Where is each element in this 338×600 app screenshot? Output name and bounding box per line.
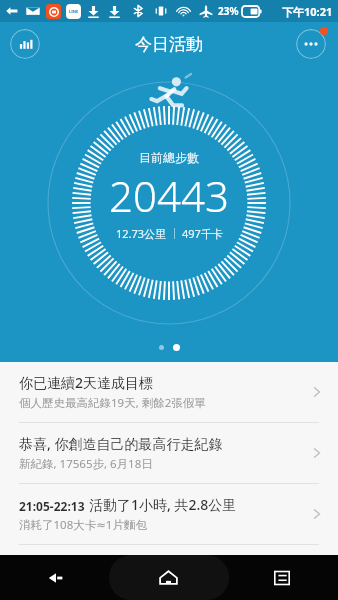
button[interactable]: 21:05-22:13 xyxy=(0,484,338,544)
staticText: 12.73公里 xyxy=(116,226,167,241)
staticText: 21:05-22:13 xyxy=(19,498,85,514)
staticText: 23% xyxy=(218,4,239,18)
button[interactable]: 更多選項 xyxy=(296,29,326,59)
button[interactable]: 主畫面 xyxy=(112,555,225,600)
staticText: 恭喜, 你創造自己的最高行走紀錄 xyxy=(19,434,223,453)
button[interactable]: 統計 xyxy=(10,29,40,59)
staticText: 消耗了108大卡≈1片麵包 xyxy=(19,517,147,533)
button[interactable]: 你已連續2天達成目標 xyxy=(0,362,338,422)
staticText: 個人歷史最高紀錄19天, 剩餘2張假單 xyxy=(19,395,206,411)
button[interactable]: 返回 xyxy=(0,555,112,600)
staticText: 活動了1小時, 共2.8公里 xyxy=(89,495,237,514)
staticText: 你已連續2天達成目標 xyxy=(19,373,154,392)
button[interactable]: 最近使用的應用程式 xyxy=(225,555,338,600)
staticText: 20443 xyxy=(109,167,229,224)
button[interactable]: 恭喜, 你創造自己的最高行走紀錄 xyxy=(0,423,338,483)
staticText: 下午10:21 xyxy=(282,4,333,19)
staticText: 497千卡 xyxy=(182,226,223,241)
staticText: 新紀錄, 17565步, 6月18日 xyxy=(19,456,153,472)
staticText: LINE xyxy=(69,9,79,14)
staticText: 目前總步數 xyxy=(139,150,199,165)
staticText: 今日活動 xyxy=(135,34,203,55)
